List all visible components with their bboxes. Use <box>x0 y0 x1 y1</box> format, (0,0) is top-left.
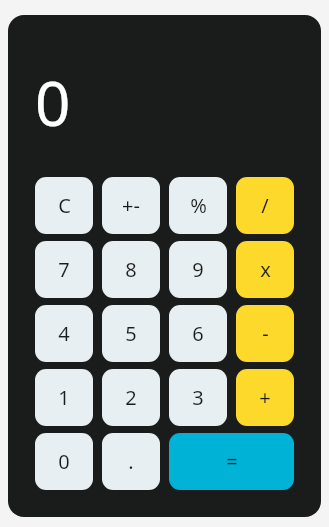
staticText: 7 <box>58 256 70 283</box>
button[interactable]: / <box>236 177 294 234</box>
staticText: 8 <box>125 256 137 283</box>
staticText: 6 <box>192 320 204 347</box>
button[interactable]: . <box>102 433 160 490</box>
staticText: 5 <box>125 320 137 347</box>
button[interactable]: C <box>35 177 93 234</box>
button[interactable]: + <box>236 369 294 426</box>
button[interactable]: = <box>169 433 294 490</box>
button[interactable]: 8 <box>102 241 160 298</box>
staticText: 0 <box>58 448 70 475</box>
button[interactable]: 4 <box>35 305 93 362</box>
staticText: +- <box>122 192 140 219</box>
button[interactable]: 2 <box>102 369 160 426</box>
button[interactable]: % <box>169 177 227 234</box>
button[interactable]: 6 <box>169 305 227 362</box>
staticText: 9 <box>192 256 204 283</box>
staticText: C <box>58 192 71 219</box>
staticText: x <box>260 256 271 283</box>
staticText: 3 <box>192 384 204 411</box>
button[interactable]: 0 <box>35 433 93 490</box>
staticText: + <box>259 384 271 411</box>
staticText: % <box>190 192 207 219</box>
button[interactable]: 9 <box>169 241 227 298</box>
button[interactable]: +- <box>102 177 160 234</box>
staticText: 1 <box>58 384 70 411</box>
staticText: . <box>128 448 134 475</box>
staticText: 0 <box>35 60 71 135</box>
button[interactable]: - <box>236 305 294 362</box>
staticText: = <box>226 448 238 475</box>
button[interactable]: 7 <box>35 241 93 298</box>
button[interactable]: 3 <box>169 369 227 426</box>
staticText: 4 <box>58 320 70 347</box>
staticText: - <box>262 320 269 347</box>
button[interactable]: 5 <box>102 305 160 362</box>
button[interactable]: 1 <box>35 369 93 426</box>
button[interactable]: x <box>236 241 294 298</box>
staticText: 2 <box>125 384 137 411</box>
staticText: / <box>261 192 269 219</box>
